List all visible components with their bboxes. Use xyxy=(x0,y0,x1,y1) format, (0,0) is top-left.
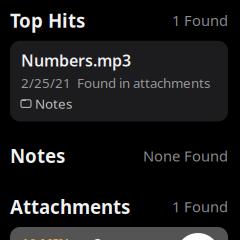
staticText: Notes xyxy=(35,95,72,112)
staticText: .mp3 xyxy=(69,235,102,240)
staticText: Top Hits xyxy=(10,8,85,33)
staticText: 10 MIN xyxy=(21,235,69,240)
button[interactable]: 10 MIN xyxy=(10,227,228,240)
staticText: 1 Found xyxy=(172,11,228,30)
staticText: 1 Found xyxy=(172,197,228,216)
staticText: Numbers.mp3 xyxy=(21,50,131,71)
staticText: Notes xyxy=(10,143,65,168)
button[interactable]: Numbers.mp3 xyxy=(10,41,228,121)
staticText: None Found xyxy=(143,146,228,166)
staticText: Attachments xyxy=(10,194,130,219)
staticText: 2/25/21 Found in attachments xyxy=(21,74,210,92)
